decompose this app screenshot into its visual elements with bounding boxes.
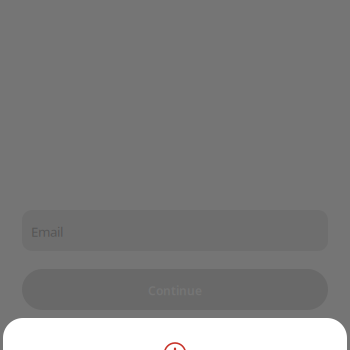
staticText: Email [31, 223, 63, 240]
staticText: Continue [148, 282, 202, 298]
